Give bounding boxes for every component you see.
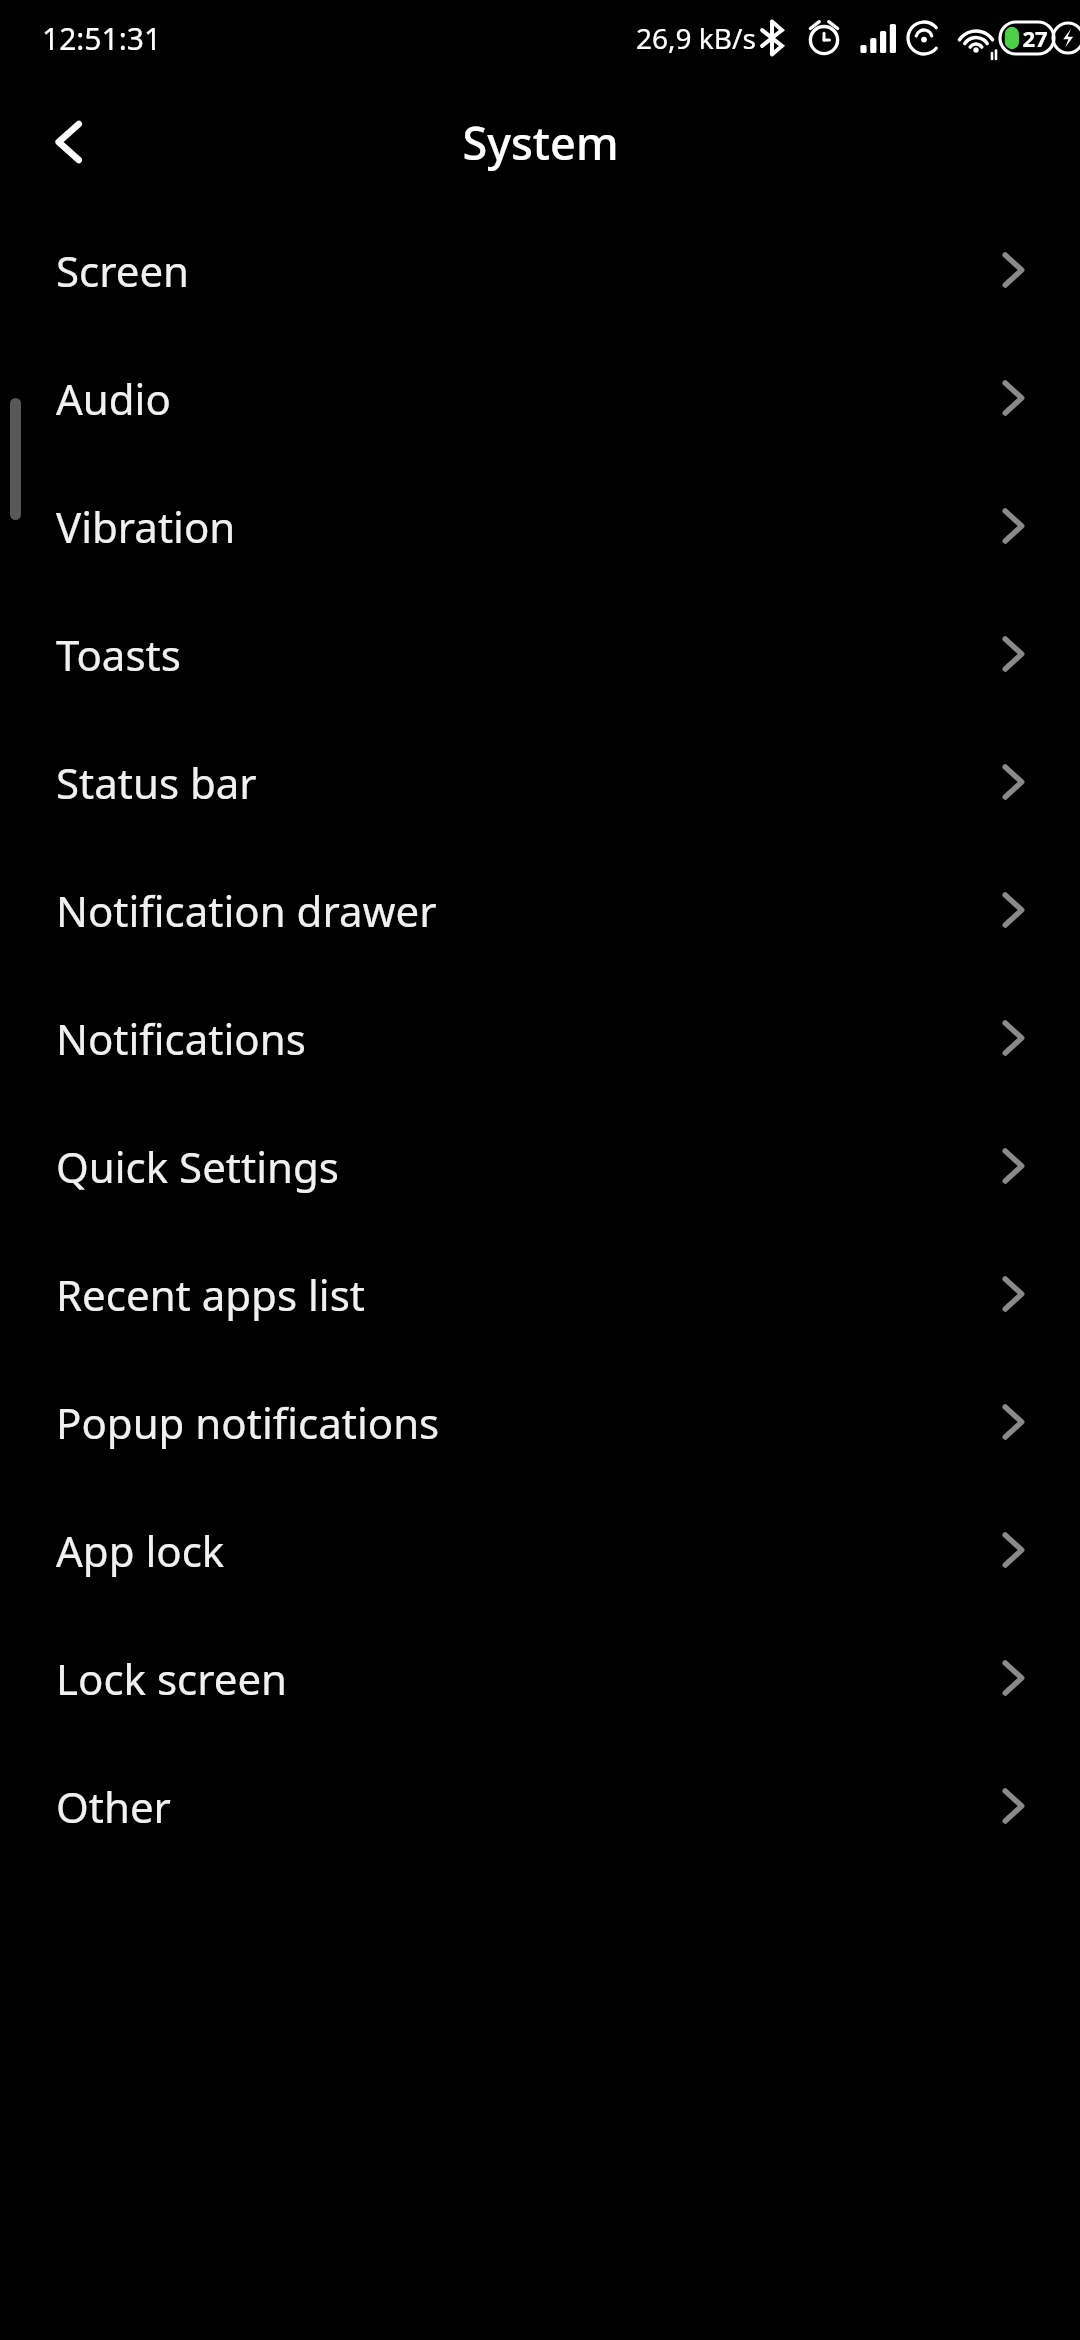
staticText: Notification drawer [56, 882, 437, 939]
staticText: Notifications [56, 1010, 306, 1067]
button[interactable]: Status bar [0, 718, 1080, 846]
staticText: Audio [56, 370, 171, 427]
button[interactable]: Notifications [0, 974, 1080, 1102]
button[interactable]: Other [0, 1742, 1080, 1870]
staticText: Lock screen [56, 1650, 288, 1707]
staticText: Screen [56, 242, 190, 299]
button[interactable]: Popup notifications [0, 1358, 1080, 1486]
staticText: Quick Settings [56, 1138, 339, 1195]
button[interactable]: Screen [0, 206, 1080, 334]
staticText: System [462, 112, 619, 173]
button[interactable]: Recent apps list [0, 1230, 1080, 1358]
button[interactable]: Vibration [0, 462, 1080, 590]
staticText: 26,9 kB/s [636, 19, 756, 57]
staticText: Toasts [56, 626, 181, 683]
staticText: Popup notifications [56, 1394, 440, 1451]
button[interactable]: Notification drawer [0, 846, 1080, 974]
staticText: Other [56, 1778, 171, 1835]
staticText: App lock [56, 1522, 225, 1579]
staticText: Vibration [56, 498, 236, 555]
staticText: 27 [1022, 23, 1048, 53]
staticText: 12:51:31 [42, 18, 162, 59]
button[interactable]: Audio [0, 334, 1080, 462]
button[interactable]: Lock screen [0, 1614, 1080, 1742]
staticText: Recent apps list [56, 1266, 365, 1323]
button[interactable]: Quick Settings [0, 1102, 1080, 1230]
staticText: Status bar [56, 754, 257, 811]
button[interactable]: Back [20, 94, 116, 190]
button[interactable]: App lock [0, 1486, 1080, 1614]
button[interactable]: Toasts [0, 590, 1080, 718]
